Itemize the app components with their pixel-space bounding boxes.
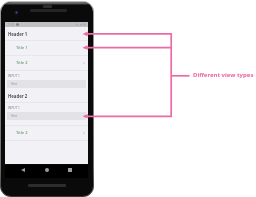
button[interactable]: Header 1 <box>5 27 88 40</box>
button[interactable]: Home <box>42 165 51 174</box>
button[interactable]: Header 2 <box>5 89 88 102</box>
staticText: Different view types <box>193 71 254 79</box>
button[interactable]: Title 2 <box>5 126 88 140</box>
button[interactable]: Hint <box>7 112 86 120</box>
staticText: Title 1 <box>16 45 28 51</box>
staticText: INPUT 1 <box>8 106 20 110</box>
button[interactable]: Title 2 <box>5 56 88 70</box>
staticText: INPUT 1 <box>8 74 20 78</box>
staticText: Hint <box>11 82 18 86</box>
button[interactable]: Recents <box>65 165 74 174</box>
staticText: Header 2 <box>8 93 28 99</box>
button[interactable]: Back <box>18 165 27 174</box>
button[interactable]: Hint <box>7 80 86 88</box>
staticText: Hint <box>11 114 18 118</box>
button[interactable]: Title 1 <box>5 41 88 55</box>
staticText: 1:10 <box>8 23 14 27</box>
staticText: Title 2 <box>16 130 28 136</box>
staticText: Header 1 <box>8 31 28 37</box>
staticText: Title 2 <box>16 60 28 66</box>
